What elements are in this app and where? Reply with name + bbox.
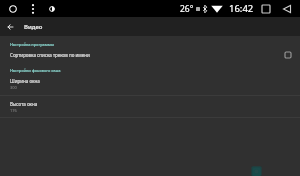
button[interactable]: Сортировка списка треков по имени xyxy=(0,49,300,60)
staticText: Ширина окна xyxy=(10,78,40,84)
staticText: 300 xyxy=(10,85,17,90)
button[interactable]: Action xyxy=(251,166,300,176)
staticText: Сортировка списка треков по имени xyxy=(10,52,285,58)
staticText: Настройки фонового окна xyxy=(10,68,61,73)
button[interactable]: Ширина окна xyxy=(0,76,300,94)
staticText: Высота окна xyxy=(10,101,38,107)
button[interactable]: Высота окна xyxy=(0,99,300,117)
staticText: 176 xyxy=(10,108,17,113)
staticText: 26° xyxy=(180,3,194,15)
staticText: 16:42 xyxy=(229,2,254,15)
staticText: Настройка программы xyxy=(10,42,55,47)
button[interactable]: Back xyxy=(0,17,21,36)
staticText: Видео xyxy=(24,23,43,31)
